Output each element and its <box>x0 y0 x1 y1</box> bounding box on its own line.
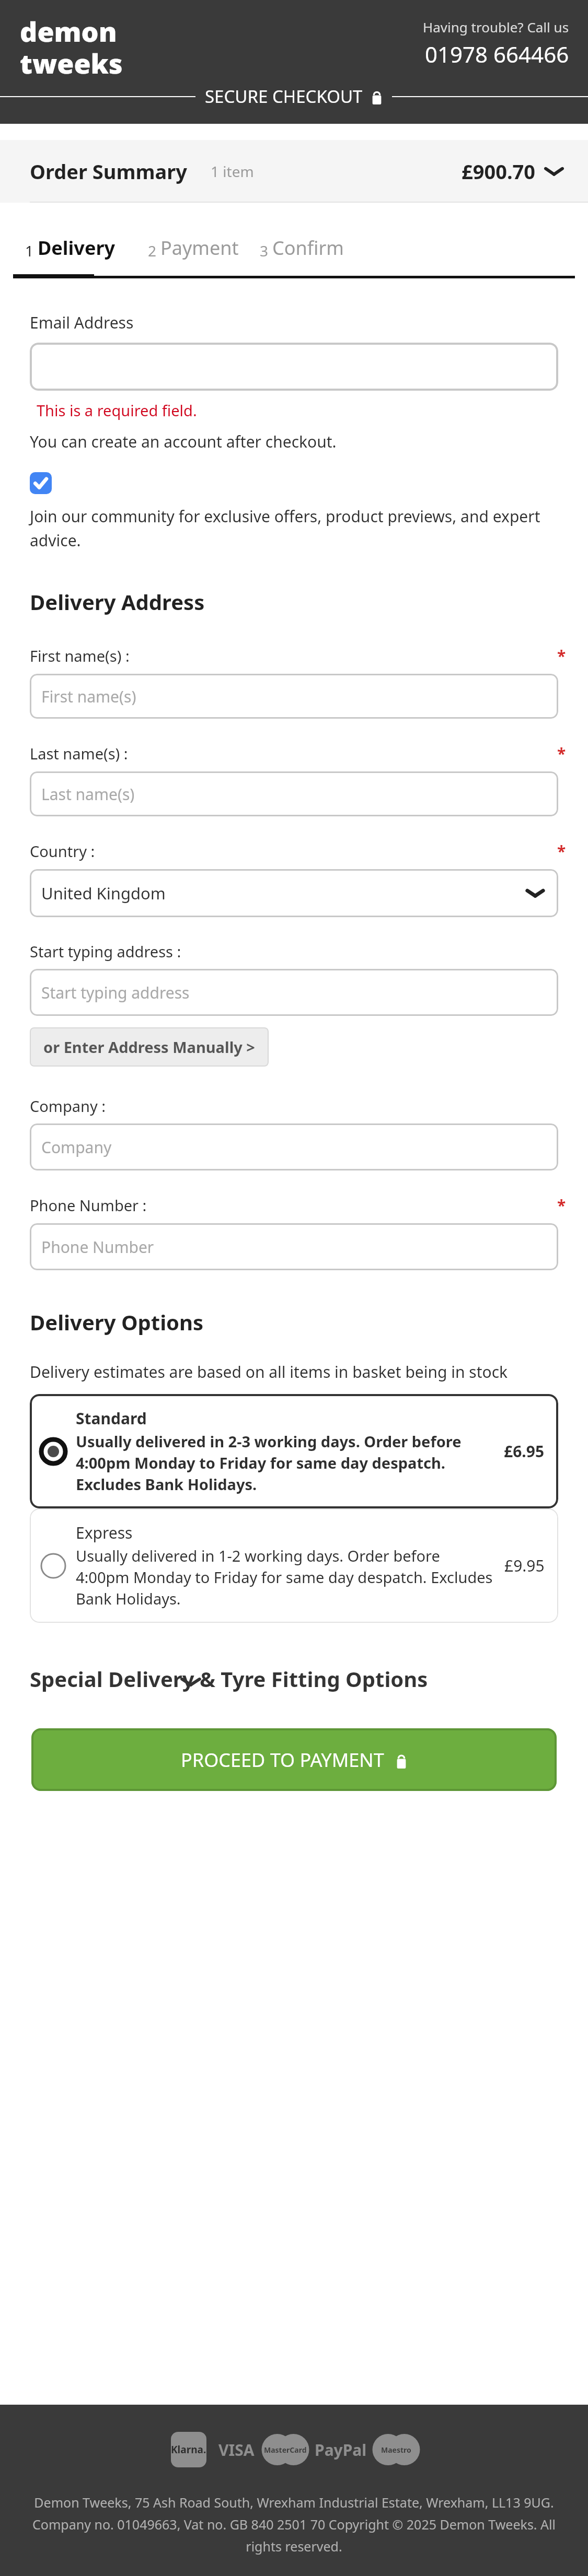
staticText: £900.70 <box>462 158 536 185</box>
button[interactable]: Start typing address <box>30 969 558 1016</box>
staticText: Last name(s) <box>41 783 135 805</box>
button[interactable]: 1 <box>25 235 121 261</box>
staticText: Company : <box>30 1096 106 1116</box>
button[interactable]: 3 <box>260 235 344 261</box>
staticText: demon <box>20 13 117 50</box>
staticText: * <box>557 840 566 862</box>
staticText: Phone Number <box>41 1236 154 1258</box>
staticText: Delivery estimates are based on all item… <box>30 1361 508 1383</box>
staticText: This is a required field. <box>37 400 197 420</box>
staticText: 1 <box>25 241 38 261</box>
staticText: Delivery <box>38 235 116 261</box>
staticText: First name(s) : <box>30 646 130 666</box>
button[interactable]: Standard <box>30 1394 558 1508</box>
staticText: * <box>557 743 566 764</box>
staticText: Order Summary <box>30 158 188 185</box>
staticText: You can create an account after checkout… <box>30 431 337 452</box>
staticText: MasterCard <box>264 2445 307 2455</box>
staticText: or Enter Address Manually > <box>43 1037 255 1057</box>
staticText: 2 <box>148 241 160 261</box>
staticText: Payment <box>160 235 239 261</box>
staticText: Country : <box>30 841 95 861</box>
staticText: Confirm <box>272 235 344 261</box>
staticText: tweeks <box>20 44 123 81</box>
staticText: Having trouble? Call us <box>423 18 569 36</box>
button[interactable]: Join our community newsletter checkbox <box>30 472 52 494</box>
staticText: * <box>557 645 566 666</box>
button[interactable]: Company <box>30 1123 558 1170</box>
staticText: Company <box>41 1137 112 1158</box>
button[interactable]: Order Summary <box>0 140 588 203</box>
staticText: Start typing address : <box>30 941 181 962</box>
staticText: * <box>557 1195 566 1216</box>
staticText: Express <box>76 1522 133 1543</box>
staticText: United Kingdom <box>41 882 166 904</box>
staticText: Klarna. <box>171 2443 206 2456</box>
button[interactable]: First name(s) <box>30 674 558 719</box>
staticText: Special Delivery & Tyre Fitting Options <box>30 1665 558 1693</box>
button[interactable]: or Enter Address Manually > <box>30 1027 269 1067</box>
staticText: Standard <box>76 1408 147 1429</box>
staticText: Last name(s) : <box>30 743 128 764</box>
staticText: £9.95 <box>504 1555 545 1576</box>
staticText: Usually delivered in 2-3 working days. O… <box>76 1431 497 1495</box>
staticText: Start typing address <box>41 982 190 1003</box>
staticText: First name(s) <box>41 686 136 707</box>
staticText: Demon Tweeks, 75 Ash Road South, Wrexham… <box>31 2493 557 2555</box>
staticText: £6.95 <box>504 1441 545 1462</box>
button[interactable]: Phone Number <box>30 1223 558 1270</box>
staticText: Delivery Address <box>30 588 205 616</box>
staticText: Email Address <box>30 312 134 333</box>
button[interactable]: Express <box>30 1508 558 1623</box>
button[interactable]: 2 <box>148 235 239 261</box>
staticText: 3 <box>260 241 272 261</box>
button[interactable]: United Kingdom <box>30 869 558 917</box>
button[interactable]: Special Delivery & Tyre Fitting Options <box>30 1665 558 1693</box>
staticText: Phone Number : <box>30 1195 147 1215</box>
staticText: PROCEED TO PAYMENT <box>181 1747 384 1773</box>
button[interactable]: PROCEED TO PAYMENT <box>31 1728 557 1791</box>
button[interactable]: Last name(s) <box>30 771 558 816</box>
staticText: SECURE CHECKOUT <box>205 85 363 108</box>
staticText: PayPal <box>315 2439 367 2461</box>
staticText: 01978 664466 <box>425 39 569 69</box>
staticText: Delivery Options <box>30 1308 204 1336</box>
staticText: Maestro <box>381 2445 411 2455</box>
staticText: Join our community for exclusive offers,… <box>30 506 557 551</box>
staticText: Usually delivered in 1-2 working days. O… <box>76 1545 497 1609</box>
staticText: 1 item <box>211 161 254 181</box>
staticText: VISA <box>218 2439 255 2461</box>
button[interactable] <box>30 343 558 391</box>
